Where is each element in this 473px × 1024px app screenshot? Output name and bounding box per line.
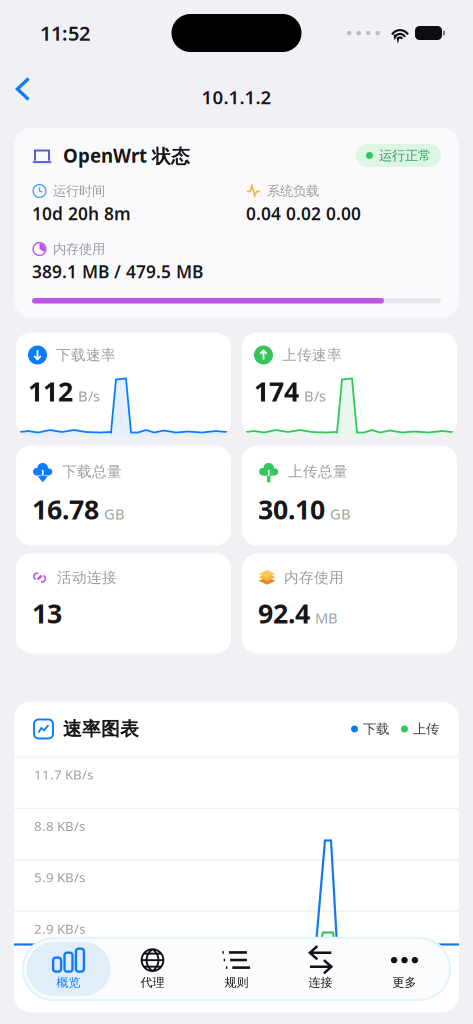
button[interactable]: 更多 — [362, 942, 446, 996]
staticText: 下载总量 — [62, 462, 122, 480]
staticText: 速率图表 — [63, 717, 139, 740]
staticText: 0.04 0.02 0.00 — [246, 202, 361, 225]
staticText: 内存使用 — [53, 241, 105, 257]
staticText: 上传总量 — [288, 462, 348, 480]
staticText: 2.9 KB/s — [34, 920, 85, 937]
staticText: 112 — [28, 373, 73, 409]
staticText: 30.10 — [258, 491, 325, 527]
staticText: 下载速率 — [56, 346, 116, 364]
staticText: 运行时间 — [53, 183, 105, 199]
staticText: B/s — [78, 386, 100, 406]
staticText: 174 — [254, 373, 299, 409]
button[interactable]: 概览 — [26, 942, 110, 996]
staticText: 下载 — [363, 721, 389, 737]
staticText: OpenWrt 状态 — [63, 143, 190, 168]
staticText: 上传 — [413, 721, 439, 737]
staticText: 运行正常 — [379, 147, 431, 164]
staticText: 代理 — [140, 975, 164, 990]
staticText: 规则 — [224, 975, 248, 990]
staticText: 系统负载 — [267, 183, 319, 199]
staticText: MB — [315, 608, 338, 628]
staticText: 16.78 — [32, 491, 99, 527]
staticText: 8.8 KB/s — [34, 817, 85, 835]
staticText: 5.9 KB/s — [34, 868, 85, 886]
button[interactable]: 规则 — [194, 942, 278, 996]
staticText: 连接 — [308, 975, 332, 990]
staticText: GB — [104, 504, 125, 524]
staticText: 10.1.1.2 — [201, 85, 271, 109]
staticText: 389.1 MB / 479.5 MB — [32, 260, 203, 283]
staticText: 10d 20h 8m — [32, 202, 131, 225]
staticText: 92.4 — [258, 595, 310, 631]
staticText: 13 — [32, 595, 62, 631]
staticText: 内存使用 — [284, 568, 344, 586]
button[interactable]: 代理 — [110, 942, 194, 996]
staticText: 活动连接 — [57, 568, 117, 586]
staticText: GB — [330, 504, 351, 524]
staticText: 概览 — [56, 975, 80, 990]
button[interactable]: 连接 — [278, 942, 362, 996]
button[interactable]: Back — [0, 70, 50, 123]
staticText: B/s — [304, 386, 326, 406]
staticText: 11:52 — [40, 20, 90, 46]
staticText: 上传速率 — [282, 346, 342, 364]
staticText: 11.7 KB/s — [34, 765, 93, 783]
staticText: 更多 — [392, 975, 416, 990]
